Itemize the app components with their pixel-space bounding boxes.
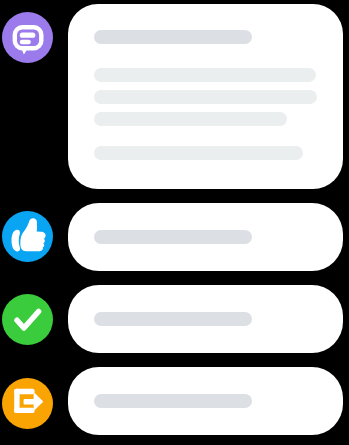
button[interactable]: Like xyxy=(2,211,53,262)
button[interactable]: Done xyxy=(2,294,53,345)
button[interactable] xyxy=(68,4,343,189)
button[interactable] xyxy=(68,203,343,271)
button[interactable] xyxy=(68,367,343,435)
button[interactable]: Sign out xyxy=(2,378,53,429)
button[interactable]: Messages xyxy=(2,12,53,63)
button[interactable] xyxy=(68,285,343,353)
